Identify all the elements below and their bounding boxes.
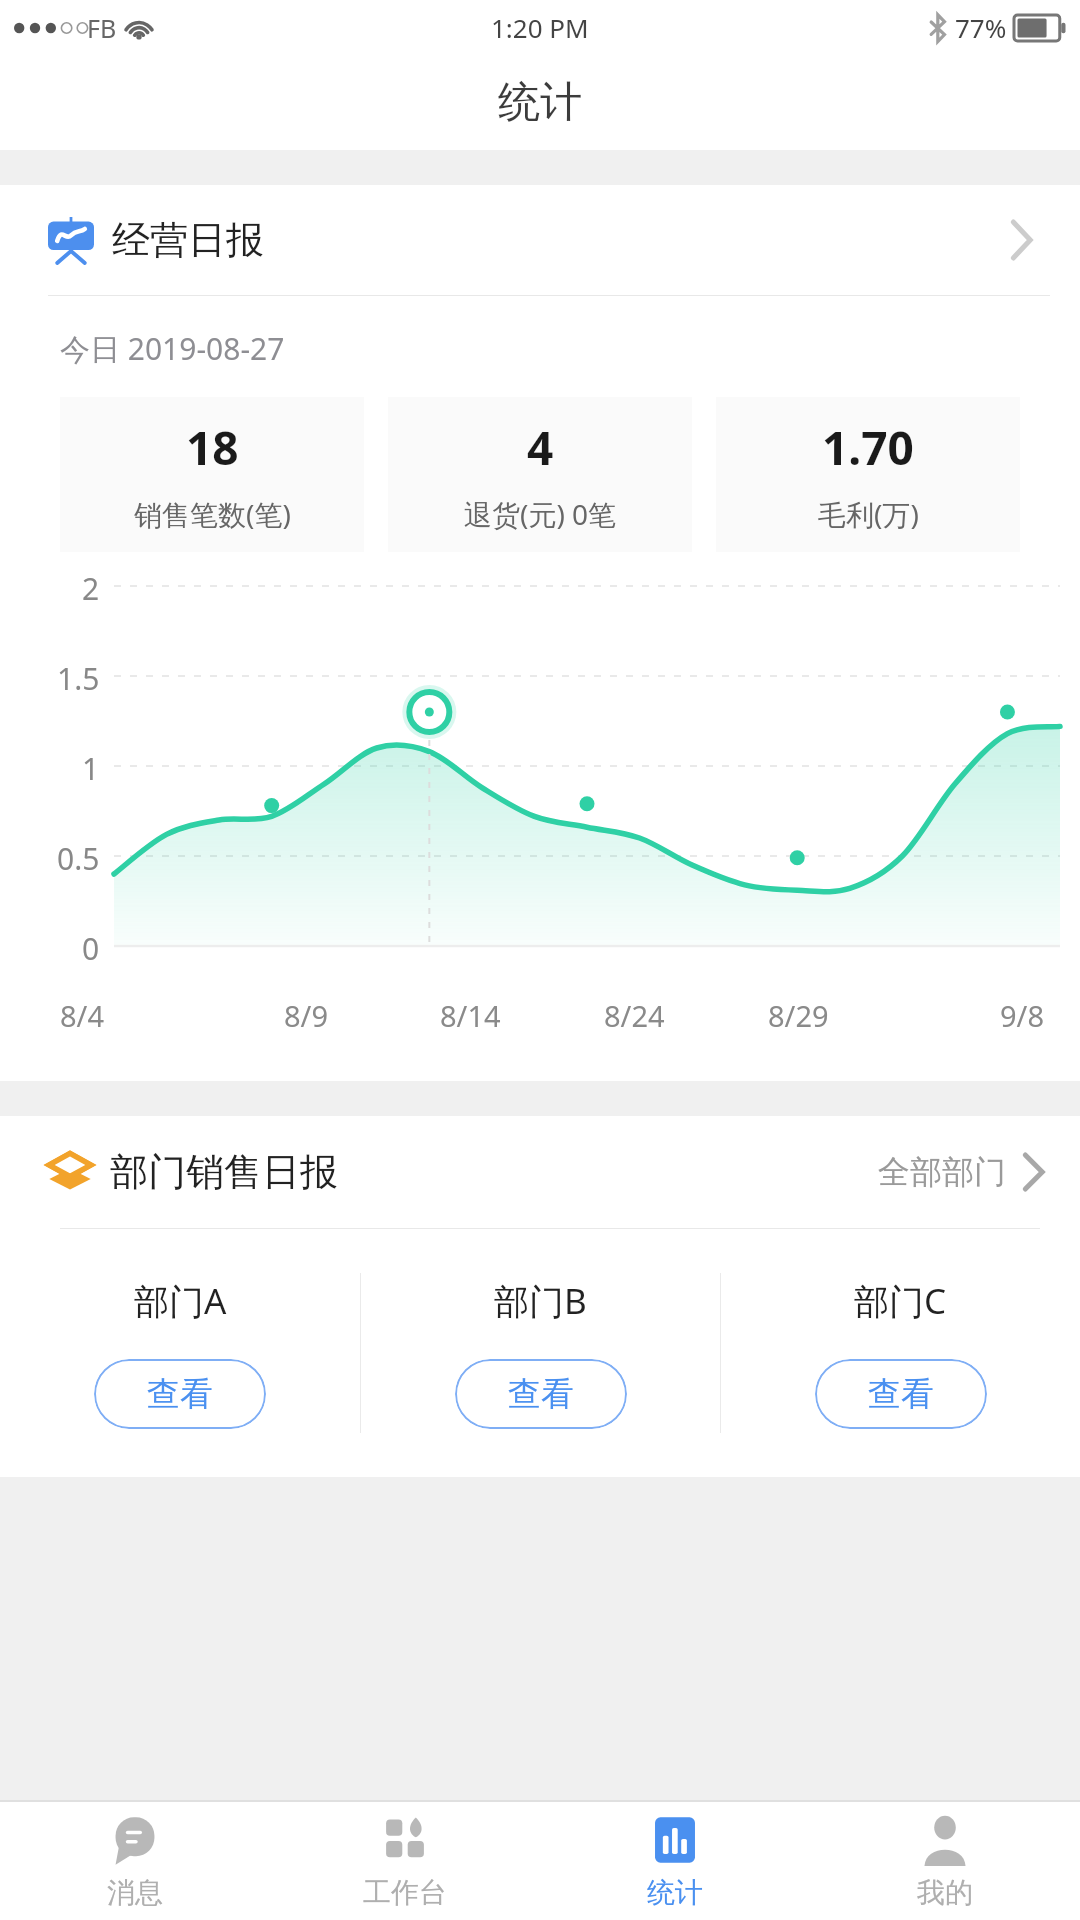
staticText: 销售笔数(笔) <box>134 495 291 533</box>
staticText: 1 <box>82 748 100 784</box>
staticText: 18 <box>186 416 239 479</box>
button[interactable]: 查看 <box>815 1359 987 1429</box>
staticText: 工作台 <box>363 1875 447 1910</box>
staticText: 统计 <box>498 76 582 129</box>
staticText: 查看 <box>868 1373 934 1415</box>
staticText: 1.5 <box>57 658 100 694</box>
staticText: 8/24 <box>604 996 665 1035</box>
button[interactable]: 我的 <box>810 1802 1080 1920</box>
button[interactable]: 部门销售日报 <box>0 1116 1080 1228</box>
staticText: 8/14 <box>440 996 501 1035</box>
staticText: 毛利(万) <box>818 495 919 533</box>
button[interactable]: 4 <box>388 397 692 552</box>
staticText: 部门C <box>854 1277 947 1325</box>
staticText: 经营日报 <box>112 216 264 264</box>
staticText: 1:20 PM <box>491 10 589 45</box>
staticText: 今日 2019-08-27 <box>60 328 285 369</box>
button[interactable]: 消息 <box>0 1802 270 1920</box>
staticText: 全部部门 <box>878 1152 1006 1192</box>
staticText: 8/4 <box>60 996 104 1035</box>
staticText: 部门销售日报 <box>110 1148 338 1196</box>
staticText: 部门B <box>494 1277 587 1325</box>
staticText: 我的 <box>917 1875 973 1910</box>
staticText: 查看 <box>508 1373 574 1415</box>
button[interactable]: 查看 <box>455 1359 627 1429</box>
staticText: 1.70 <box>822 416 914 479</box>
staticText: 4 <box>527 416 554 479</box>
button[interactable]: 1.70 <box>716 397 1020 552</box>
button[interactable]: 查看 <box>94 1359 266 1429</box>
staticText: 0 <box>82 928 100 964</box>
staticText: 8/29 <box>768 996 829 1035</box>
staticText: 消息 <box>107 1875 163 1910</box>
staticText: 部门A <box>134 1277 227 1325</box>
button[interactable]: 统计 <box>540 1802 810 1920</box>
staticText: 2 <box>82 568 100 604</box>
staticText: 查看 <box>147 1373 213 1415</box>
staticText: 统计 <box>647 1875 703 1910</box>
staticText: 退货(元) 0笔 <box>464 495 617 533</box>
staticText: 9/8 <box>1000 996 1044 1035</box>
button[interactable]: 工作台 <box>270 1802 540 1920</box>
staticText: 8/9 <box>284 996 328 1035</box>
button[interactable]: 18 <box>60 397 364 552</box>
staticText: 0.5 <box>57 838 100 874</box>
button[interactable]: 经营日报 <box>0 185 1080 295</box>
staticText: FB <box>87 11 117 45</box>
staticText: 77% <box>955 10 1007 45</box>
